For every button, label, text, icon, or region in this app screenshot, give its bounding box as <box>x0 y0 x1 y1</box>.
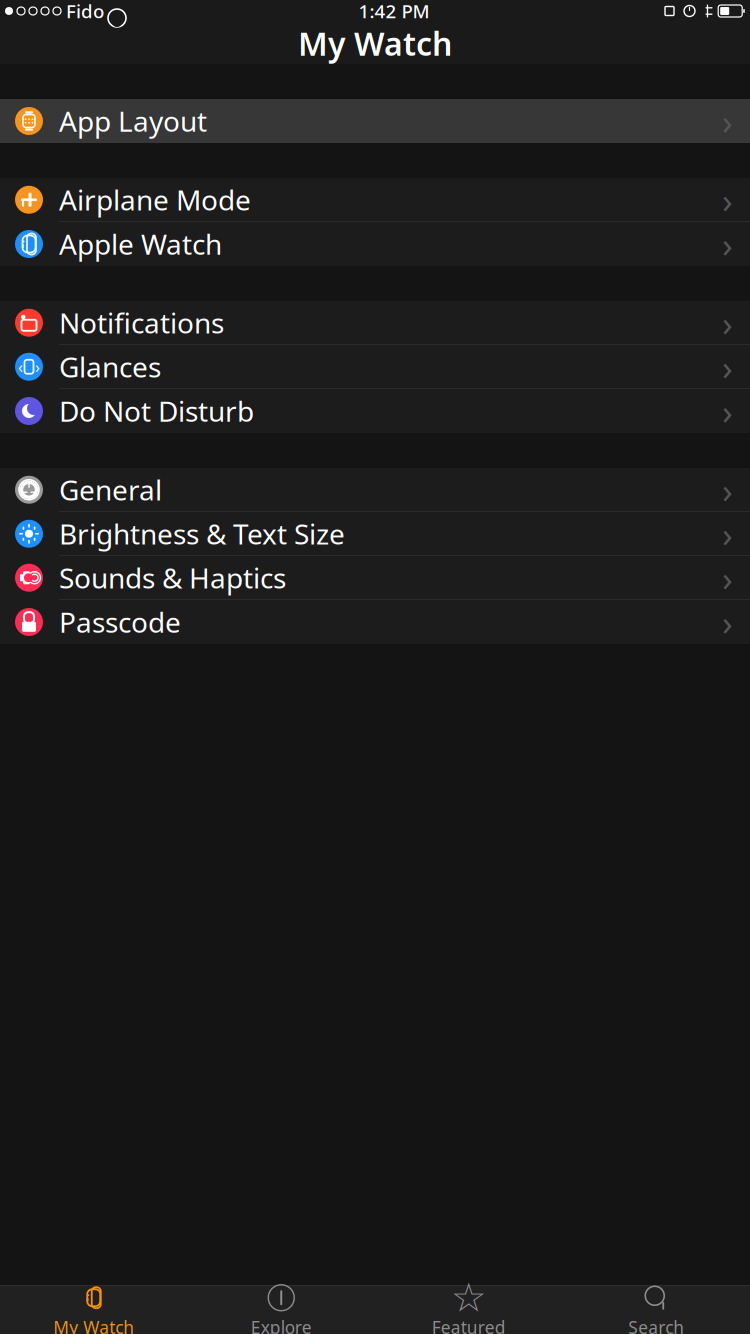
button[interactable]: Search <box>562 1277 750 1334</box>
staticText: › <box>722 98 733 144</box>
staticText: Search <box>628 1316 684 1334</box>
staticText: › <box>35 356 40 377</box>
button[interactable]: ‹ <box>0 345 750 389</box>
staticText: › <box>722 221 733 267</box>
staticText: My Watch <box>298 22 452 64</box>
staticText: › <box>722 555 733 601</box>
staticText: › <box>722 300 733 346</box>
staticText: Fido <box>66 0 104 23</box>
staticText: App Layout <box>59 102 207 140</box>
staticText: › <box>722 511 733 557</box>
staticText: 1:42 PM <box>358 0 429 23</box>
staticText: Passcode <box>59 603 181 641</box>
button[interactable]: My Watch <box>0 1277 187 1334</box>
button[interactable]: Notifications <box>0 301 750 345</box>
button[interactable]: ☆ <box>375 1277 562 1334</box>
staticText: › <box>722 467 733 513</box>
staticText: › <box>722 177 733 223</box>
button[interactable]: Apple Watch <box>0 222 750 266</box>
staticText: Explore <box>251 1316 312 1334</box>
button[interactable]: Do Not Disturb <box>0 389 750 433</box>
staticText: Brightness & Text Size <box>59 515 345 552</box>
staticText: General <box>59 471 162 508</box>
staticText: › <box>722 344 733 390</box>
button[interactable]: Passcode <box>0 600 750 644</box>
staticText: ☆ <box>451 1275 487 1320</box>
button[interactable]: Explore <box>187 1277 375 1334</box>
staticText: Featured <box>432 1316 506 1334</box>
button[interactable]: Airplane Mode <box>0 178 750 222</box>
staticText: ‹ <box>18 356 23 377</box>
staticText: Notifications <box>59 304 224 341</box>
staticText: › <box>722 388 733 434</box>
staticText: My Watch <box>53 1316 134 1334</box>
button[interactable]: Sounds & Haptics <box>0 556 750 600</box>
button[interactable]: App Layout <box>0 99 750 143</box>
staticText: Do Not Disturb <box>59 392 254 430</box>
staticText: Glances <box>59 348 161 385</box>
staticText: Airplane Mode <box>59 181 251 218</box>
button[interactable]: Brightness & Text Size <box>0 512 750 556</box>
staticText: Apple Watch <box>59 225 222 263</box>
staticText: Sounds & Haptics <box>59 559 286 596</box>
staticText: › <box>722 599 733 645</box>
button[interactable]: General <box>0 468 750 512</box>
